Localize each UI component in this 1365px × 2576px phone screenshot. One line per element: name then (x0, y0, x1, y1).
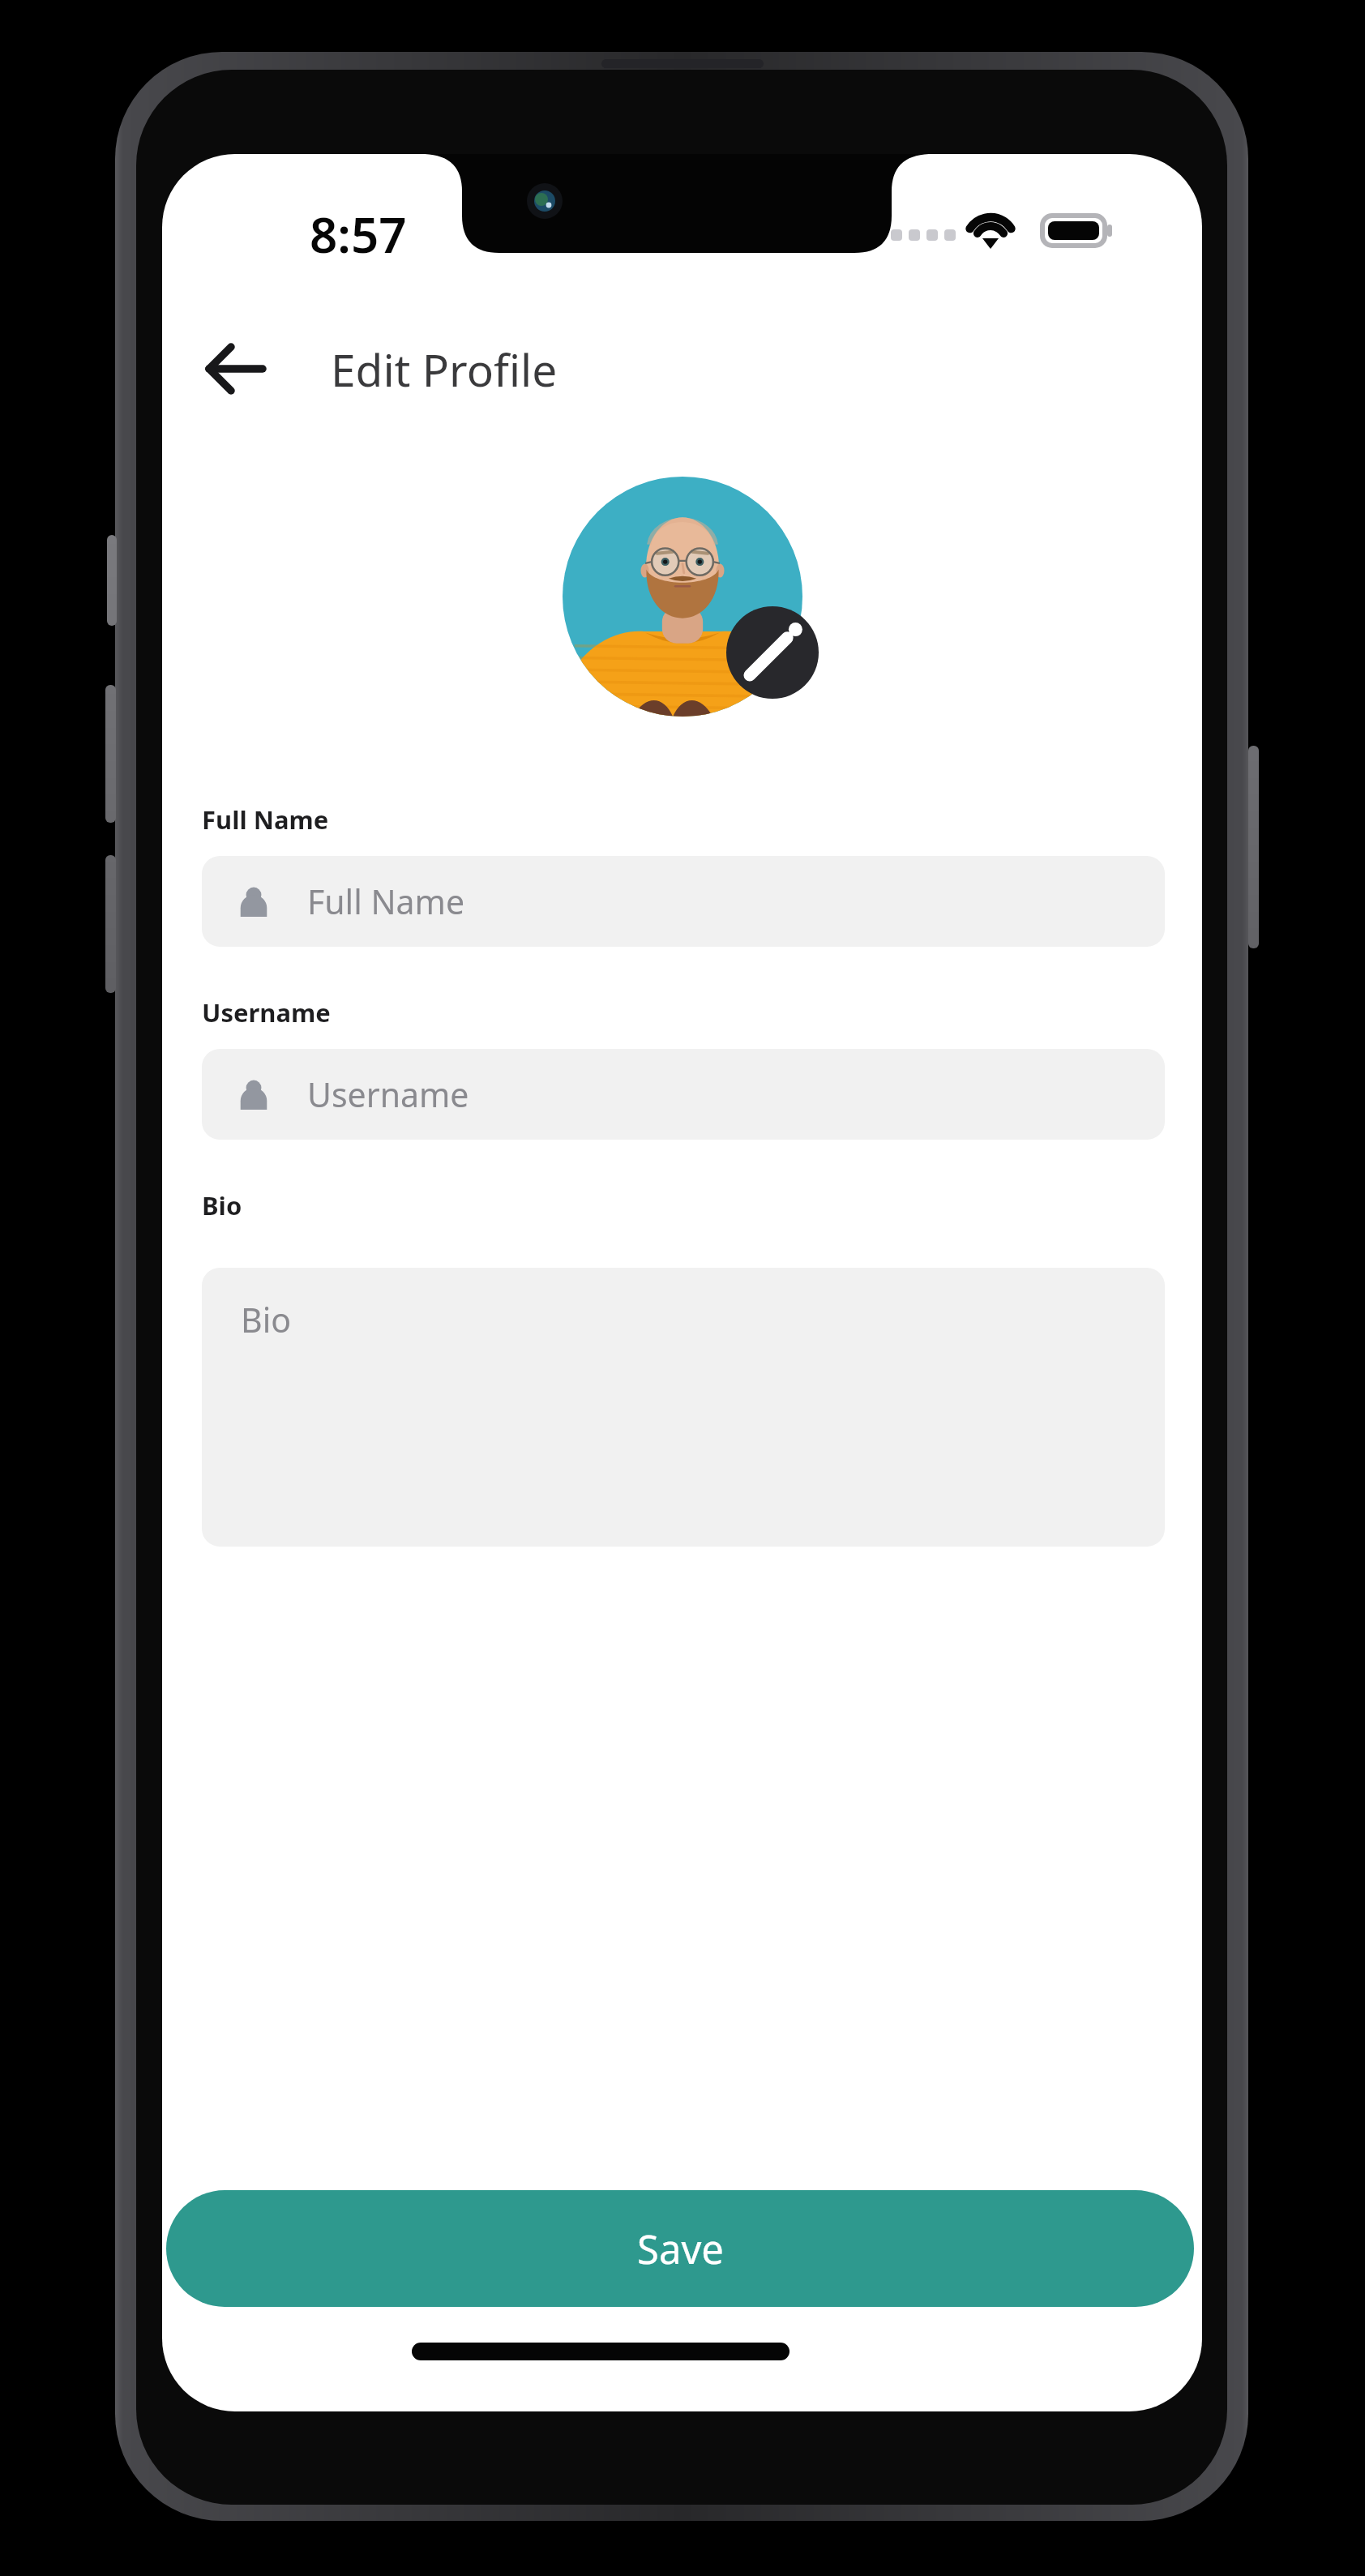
staticText: Full Name (202, 802, 329, 837)
button[interactable]: Full Name (202, 856, 1165, 947)
button[interactable]: Save (166, 2190, 1194, 2307)
staticText: Username (307, 1072, 469, 1117)
staticText: 8:57 (310, 201, 407, 267)
staticText: Save (637, 2222, 724, 2276)
button[interactable]: Profile photo (563, 477, 802, 717)
staticText: Bio (241, 1297, 292, 1342)
staticText: Full Name (307, 879, 465, 924)
staticText: Username (202, 995, 331, 1029)
staticText: Edit Profile (331, 339, 558, 400)
staticText: Bio (202, 1188, 242, 1222)
button[interactable]: Change photo (726, 606, 819, 699)
button[interactable]: Username (202, 1049, 1165, 1140)
button[interactable]: Back (188, 321, 284, 417)
button[interactable]: Bio (202, 1268, 1165, 1547)
